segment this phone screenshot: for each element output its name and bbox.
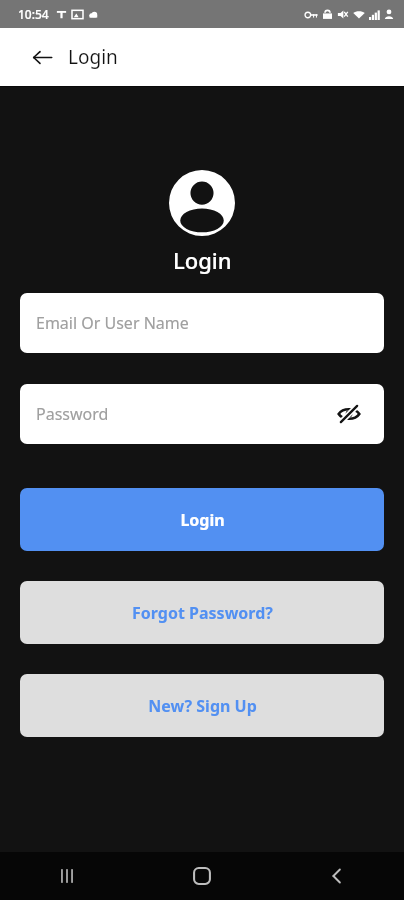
button[interactable]: Forgot Password?: [20, 581, 384, 644]
staticText: Login: [173, 245, 232, 275]
button[interactable]: Email Or User Name: [20, 293, 384, 353]
button[interactable]: Password: [20, 384, 384, 444]
staticText: 10:54: [18, 6, 49, 22]
button[interactable]: Show password: [333, 398, 365, 430]
button[interactable]: Login: [20, 488, 384, 551]
staticText: Email Or User Name: [36, 312, 189, 334]
staticText: New? Sign Up: [148, 695, 257, 717]
staticText: Forgot Password?: [132, 602, 273, 624]
button[interactable]: Back: [269, 852, 404, 900]
button[interactable]: Recent apps: [0, 852, 134, 900]
button[interactable]: New? Sign Up: [20, 674, 384, 737]
staticText: Login: [68, 44, 118, 70]
button[interactable]: Home: [134, 852, 269, 900]
button[interactable]: Back: [22, 37, 62, 77]
staticText: Password: [36, 403, 109, 425]
staticText: Login: [180, 509, 225, 531]
